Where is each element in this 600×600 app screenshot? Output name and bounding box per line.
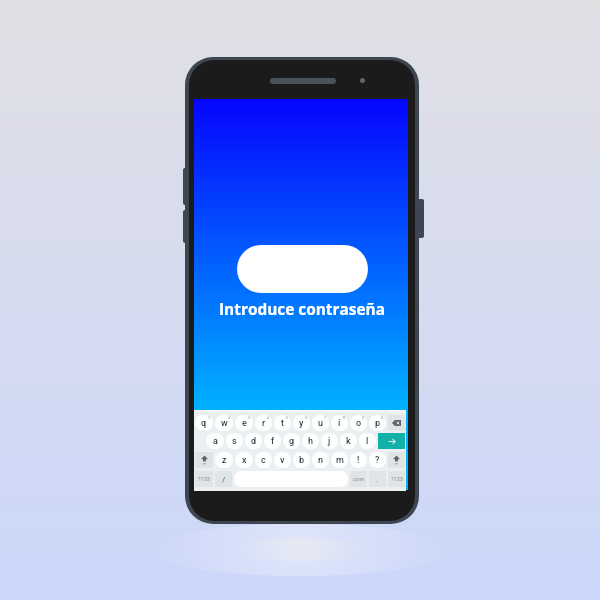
button[interactable]: d	[245, 433, 262, 449]
button[interactable]: 1	[195, 415, 213, 431]
staticText: ?123	[391, 476, 403, 482]
staticText: 8	[343, 415, 346, 420]
button[interactable]: 5	[274, 415, 291, 431]
button[interactable]: k	[340, 433, 357, 449]
button[interactable]: b	[293, 452, 310, 468]
button[interactable]: .com	[350, 471, 367, 487]
staticText: ?	[375, 455, 380, 466]
button[interactable]: Password field	[237, 245, 368, 293]
staticText: f	[271, 436, 275, 447]
staticText: q	[201, 418, 207, 429]
staticText: a	[213, 436, 218, 447]
staticText: c	[261, 455, 266, 466]
staticText: 0	[381, 415, 384, 420]
button[interactable]: 8	[331, 415, 348, 431]
button[interactable]: !	[350, 452, 367, 468]
staticText: r	[262, 418, 266, 429]
button[interactable]: c	[255, 452, 272, 468]
staticText: x	[242, 455, 247, 466]
staticText: e	[242, 418, 247, 429]
staticText: t	[281, 418, 284, 429]
staticText: 3	[248, 415, 251, 420]
button[interactable]: h	[302, 433, 319, 449]
button[interactable]: 3	[235, 415, 253, 431]
staticText: !	[357, 455, 360, 466]
button[interactable]: 2	[215, 415, 233, 431]
staticText: l	[366, 436, 369, 447]
button[interactable]: s	[226, 433, 243, 449]
staticText: z	[222, 455, 227, 466]
staticText: 2	[228, 415, 231, 420]
button[interactable]: g	[283, 433, 300, 449]
staticText: v	[280, 455, 285, 466]
button[interactable]: ?123	[195, 471, 213, 487]
staticText: .com	[352, 476, 365, 482]
staticText: i	[338, 418, 341, 429]
button[interactable]: n	[312, 452, 329, 468]
button[interactable]: 9	[350, 415, 367, 431]
staticText: .	[376, 475, 379, 484]
button[interactable]: Shift	[195, 452, 213, 468]
button[interactable]: l	[359, 433, 376, 449]
button[interactable]: v	[274, 452, 291, 468]
button[interactable]: .	[369, 471, 386, 487]
button[interactable]: ?	[369, 452, 386, 468]
staticText: 6	[305, 415, 308, 420]
button[interactable]: a	[206, 433, 224, 449]
button[interactable]: 6	[293, 415, 310, 431]
button[interactable]: x	[235, 452, 253, 468]
staticText: Introduce contraseña	[219, 299, 385, 320]
staticText: 4	[267, 415, 270, 420]
button[interactable]: 0	[369, 415, 386, 431]
staticText: b	[299, 455, 305, 466]
staticText: y	[299, 418, 304, 429]
button[interactable]: Enter	[378, 433, 405, 449]
staticText: 7	[324, 415, 327, 420]
staticText: p	[375, 418, 381, 429]
button[interactable]: 4	[255, 415, 272, 431]
button[interactable]: m	[331, 452, 348, 468]
staticText: n	[318, 455, 324, 466]
staticText: 5	[286, 415, 289, 420]
button[interactable]: Backspace	[388, 415, 405, 431]
button[interactable]: j	[321, 433, 338, 449]
button[interactable]: Shift	[388, 452, 405, 468]
staticText: d	[251, 436, 257, 447]
staticText: j	[328, 436, 331, 447]
staticText: h	[308, 436, 314, 447]
staticText: o	[356, 418, 362, 429]
staticText: g	[289, 436, 295, 447]
staticText: /	[222, 475, 226, 484]
staticText: w	[221, 418, 228, 429]
staticText: m	[336, 455, 344, 466]
staticText: ?123	[198, 476, 210, 482]
staticText: s	[232, 436, 237, 447]
staticText: 1	[208, 415, 211, 420]
button[interactable]: f	[264, 433, 281, 449]
staticText: u	[318, 418, 324, 429]
button[interactable]: ?123	[388, 471, 405, 487]
button[interactable]: /	[215, 471, 232, 487]
button[interactable]: 7	[312, 415, 329, 431]
staticText: k	[346, 436, 351, 447]
button[interactable]: z	[215, 452, 233, 468]
staticText: 9	[362, 415, 365, 420]
